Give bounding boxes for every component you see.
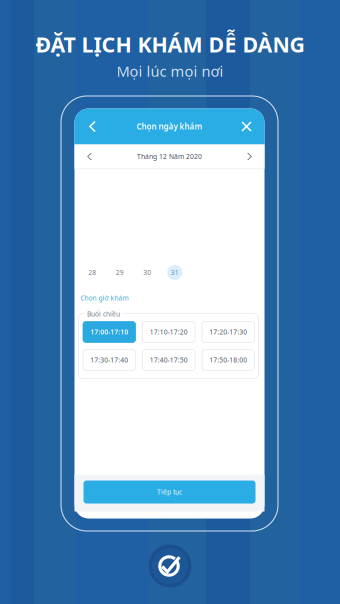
button[interactable]: Close	[233, 111, 259, 141]
staticText: 30	[143, 268, 151, 277]
staticText: Buổi chiều	[87, 309, 120, 318]
staticText: 17:50-18:00	[209, 356, 247, 364]
button[interactable]: Next month	[238, 145, 260, 167]
staticText: ĐẶT LỊCH KHÁM DỄ DÀNG	[35, 30, 304, 58]
staticText: 29	[116, 268, 124, 277]
staticText: 17:20-17:30	[209, 328, 247, 336]
button[interactable]: 31	[161, 262, 188, 282]
button[interactable]: Tiếp tục	[83, 480, 255, 503]
button[interactable]: 17:10-17:20	[142, 321, 195, 342]
staticText: Chọn giờ khám	[80, 293, 128, 302]
staticText: Mọi lúc mọi nơi	[116, 61, 223, 81]
staticText: 17:00-17:10	[90, 328, 128, 336]
staticText: 31	[171, 268, 179, 277]
button[interactable]: Previous month	[78, 145, 100, 167]
staticText: 28	[88, 268, 96, 277]
button[interactable]: 17:50-18:00	[202, 349, 254, 370]
button[interactable]: 29	[106, 262, 133, 282]
staticText: Tháng 12 Năm 2020	[137, 152, 202, 161]
button[interactable]: 17:40-17:50	[142, 349, 195, 370]
button[interactable]: 28	[78, 262, 106, 282]
staticText: 17:10-17:20	[150, 328, 188, 336]
button[interactable]: 30	[133, 262, 161, 282]
staticText: 17:40-17:50	[150, 356, 188, 364]
button[interactable]: 17:00-17:10	[83, 321, 135, 342]
button[interactable]: 17:20-17:30	[202, 321, 254, 342]
button[interactable]: Back	[79, 111, 105, 141]
staticText: Tiếp tục	[157, 488, 182, 496]
staticText: Chọn ngày khám	[136, 121, 202, 132]
button[interactable]: 17:30-17:40	[83, 349, 135, 370]
staticText: 17:30-17:40	[90, 356, 128, 364]
